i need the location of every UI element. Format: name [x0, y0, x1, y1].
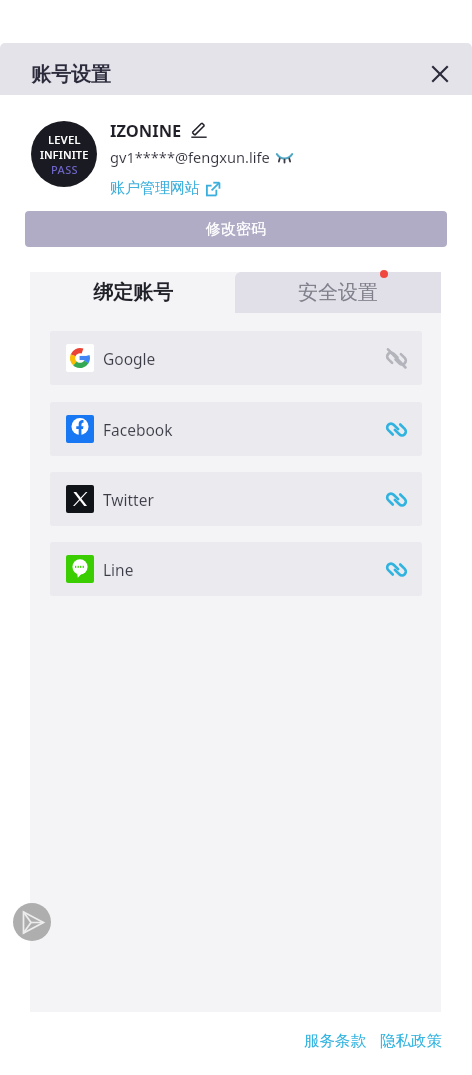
button[interactable]: Close	[427, 61, 453, 87]
staticText: 修改密码	[206, 220, 266, 239]
staticText: 绑定账号	[93, 280, 173, 305]
staticText: Google	[103, 348, 156, 369]
button[interactable]: Twitter	[50, 472, 422, 526]
button[interactable]: 服务条款	[304, 1031, 366, 1051]
button[interactable]: Facebook	[50, 402, 422, 456]
staticText: Twitter	[103, 489, 154, 510]
button[interactable]: 安全设置	[235, 272, 441, 313]
button[interactable]: 修改密码	[25, 211, 447, 247]
staticText: INFINITE	[40, 147, 89, 162]
staticText: PASS	[51, 162, 79, 177]
staticText: Facebook	[103, 419, 173, 440]
button[interactable]: Send feedback	[13, 903, 51, 941]
button[interactable]: Edit nickname	[189, 120, 209, 140]
staticText: 安全设置	[298, 280, 378, 305]
button[interactable]: Google	[50, 331, 422, 385]
staticText: IZONINE	[110, 119, 182, 141]
button[interactable]: Show email address	[274, 147, 294, 167]
button[interactable]: 隐私政策	[380, 1031, 442, 1051]
staticText: LEVEL	[48, 132, 81, 147]
staticText: gv1*****@fengxun.life	[110, 147, 270, 167]
button[interactable]: 绑定账号	[30, 272, 235, 313]
staticText: 账号设置	[31, 62, 111, 87]
staticText: Line	[103, 559, 134, 580]
button[interactable]: 账户管理网站	[110, 179, 220, 198]
button[interactable]: Line	[50, 542, 422, 596]
staticText: 账户管理网站	[110, 179, 200, 198]
